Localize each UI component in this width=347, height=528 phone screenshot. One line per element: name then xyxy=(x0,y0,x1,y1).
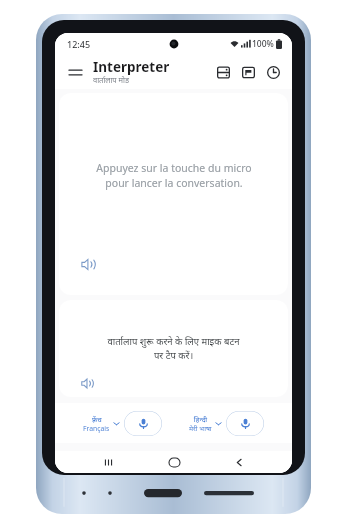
staticText: हिन्दी xyxy=(194,415,208,424)
button[interactable]: History xyxy=(262,61,284,83)
staticText: 100% xyxy=(252,38,274,50)
button[interactable]: Play Hindi audio xyxy=(77,373,97,393)
button[interactable]: Back xyxy=(226,451,252,473)
staticText: मेरी भाषा xyxy=(189,424,212,433)
staticText: Appuyez sur la touche du micro pour lanc… xyxy=(96,161,252,190)
button[interactable]: Menu xyxy=(65,62,85,82)
staticText: 12:45 xyxy=(67,38,91,50)
staticText: वार्तालाप मोड xyxy=(93,75,130,85)
button[interactable]: Recents xyxy=(95,451,121,473)
staticText: फ़्रेंच xyxy=(92,415,102,424)
staticText: Français xyxy=(83,424,110,433)
staticText: Interpreter xyxy=(93,58,170,76)
button[interactable]: Hindi microphone xyxy=(226,411,264,436)
button[interactable]: Play French audio xyxy=(77,253,99,275)
button[interactable]: Home xyxy=(161,451,187,473)
staticText: वार्तालाप शुरू करने के लिए माइक बटन पर ट… xyxy=(107,335,240,362)
button[interactable]: फ़्रेंच xyxy=(83,415,110,433)
button[interactable]: French microphone xyxy=(124,411,162,436)
button[interactable]: Split view xyxy=(212,61,234,83)
button[interactable]: Conversation mode xyxy=(237,61,259,83)
button[interactable]: हिन्दी xyxy=(189,415,212,433)
